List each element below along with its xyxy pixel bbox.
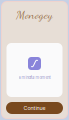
staticText: Continue [23,105,45,111]
staticText: Monogey [16,8,53,22]
staticText: a mindful moment [18,75,50,80]
button[interactable]: Continue [6,102,63,114]
